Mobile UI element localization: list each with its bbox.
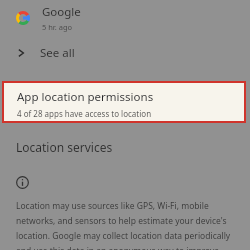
staticText: 5 hr. ago	[42, 22, 73, 32]
staticText: and use this data in an anonymous way to…	[16, 245, 220, 250]
staticText: App location permissions	[17, 89, 154, 105]
button[interactable]: See all	[0, 41, 250, 65]
staticText: networks, and sensors to help estimate y…	[16, 215, 227, 227]
staticText: 4 of 28 apps have access to location	[17, 108, 152, 119]
button[interactable]: Information	[16, 176, 29, 189]
staticText: Location may use sources like GPS, Wi-Fi…	[16, 200, 209, 212]
staticText: Google	[42, 4, 81, 20]
button[interactable]: Google	[0, 0, 250, 36]
button[interactable]: App location permissions	[4, 83, 244, 121]
staticText: Location services	[16, 139, 113, 155]
staticText: location. Google may collect location da…	[16, 230, 231, 242]
staticText: See all	[40, 45, 75, 61]
